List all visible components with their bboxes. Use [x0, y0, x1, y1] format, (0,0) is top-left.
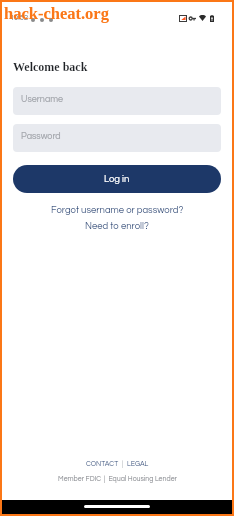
- button[interactable]: LEGAL: [127, 460, 149, 467]
- staticText: |: [119, 460, 127, 467]
- button[interactable]: Password: [13, 124, 221, 152]
- staticText: Need to enroll?: [85, 221, 149, 231]
- staticText: Password: [21, 132, 61, 141]
- staticText: 10:52: [10, 14, 29, 22]
- staticText: Log in: [104, 174, 130, 184]
- staticText: Forgot username or password?: [51, 205, 184, 215]
- button[interactable]: Username: [13, 87, 221, 115]
- button[interactable]: Forgot username or password?: [2, 203, 232, 216]
- staticText: Member FDIC | Equal Housing Lender: [58, 475, 177, 482]
- staticText: hack-cheat.org: [4, 4, 109, 22]
- staticText: Welcome back: [13, 60, 88, 73]
- button[interactable]: CONTACT: [86, 460, 119, 467]
- button[interactable]: Log in: [13, 165, 221, 193]
- button[interactable]: Need to enroll?: [2, 219, 232, 232]
- staticText: Username: [21, 95, 64, 104]
